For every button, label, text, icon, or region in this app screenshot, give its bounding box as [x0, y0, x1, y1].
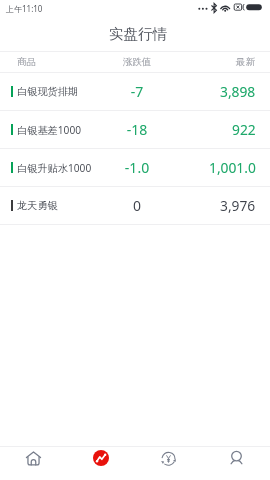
staticText: 上午11:10 — [6, 3, 43, 14]
staticText: 0 — [105, 196, 169, 215]
staticText: 商品 — [17, 56, 36, 68]
staticText: -18 — [105, 120, 169, 139]
staticText: 白银基差1000 — [17, 123, 82, 137]
staticText: -1.0 — [105, 158, 169, 177]
button[interactable]: 白银升贴水1000 — [0, 149, 270, 186]
button[interactable]: Home — [0, 447, 67, 480]
staticText: 白银现货排期 — [17, 85, 79, 98]
button[interactable]: 龙天勇银 — [0, 187, 270, 224]
staticText: 1,001.0 — [209, 158, 256, 177]
staticText: -7 — [105, 82, 169, 101]
staticText: 3,898 — [220, 82, 256, 101]
button[interactable]: 白银现货排期 — [0, 73, 270, 110]
staticText: 922 — [232, 120, 256, 139]
staticText: 涨跌值 — [105, 56, 169, 68]
staticText: 3,976 — [220, 196, 256, 215]
staticText: 白银升贴水1000 — [17, 161, 92, 175]
button[interactable]: Trade — [134, 447, 202, 480]
staticText: 龙天勇银 — [17, 199, 58, 212]
button[interactable]: Profile — [202, 447, 270, 480]
staticText: 最新 — [236, 56, 255, 68]
button[interactable]: 白银基差1000 — [0, 111, 270, 148]
staticText: 实盘行情 — [109, 25, 167, 43]
button[interactable]: Market — [67, 447, 134, 480]
